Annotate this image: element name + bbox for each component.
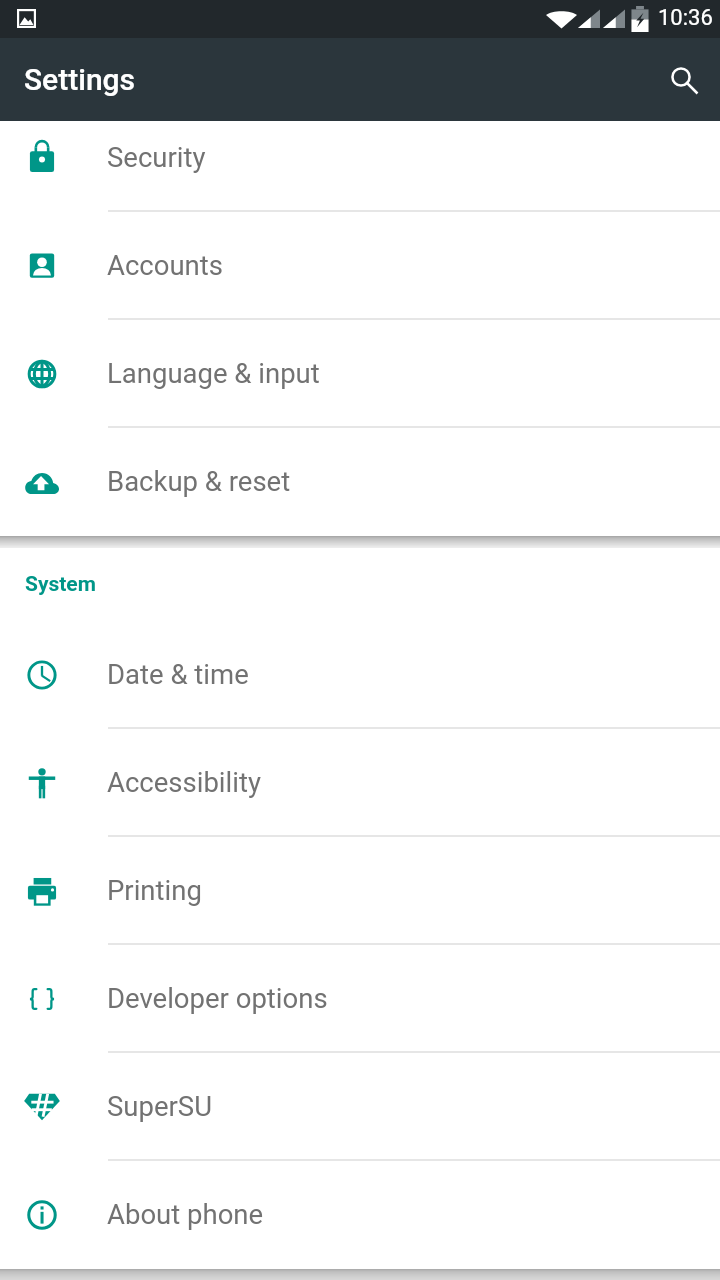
button[interactable]: SuperSU bbox=[0, 1053, 720, 1161]
staticText: Developer options bbox=[107, 982, 328, 1014]
staticText: Accounts bbox=[107, 249, 223, 281]
button[interactable]: Backup & reset bbox=[0, 428, 720, 536]
staticText: Backup & reset bbox=[107, 465, 291, 497]
button[interactable]: Language & input bbox=[0, 320, 720, 428]
button[interactable]: About phone bbox=[0, 1161, 720, 1269]
staticText: Date & time bbox=[107, 658, 249, 690]
staticText: About phone bbox=[107, 1198, 264, 1230]
staticText: Language & input bbox=[107, 357, 320, 389]
button[interactable]: Printing bbox=[0, 837, 720, 945]
staticText: Printing bbox=[107, 874, 202, 906]
button[interactable]: Security bbox=[0, 121, 720, 212]
staticText: SuperSU bbox=[107, 1090, 212, 1122]
staticText: System bbox=[25, 572, 96, 597]
button[interactable]: Developer options bbox=[0, 945, 720, 1053]
button[interactable]: Date & time bbox=[0, 621, 720, 729]
staticText: Accessibility bbox=[107, 766, 261, 798]
button[interactable]: Accounts bbox=[0, 212, 720, 320]
button[interactable]: Accessibility bbox=[0, 729, 720, 837]
staticText: Settings bbox=[24, 62, 136, 97]
button[interactable]: Search bbox=[660, 56, 708, 104]
staticText: 10:36 bbox=[658, 5, 713, 31]
staticText: Security bbox=[107, 141, 206, 173]
